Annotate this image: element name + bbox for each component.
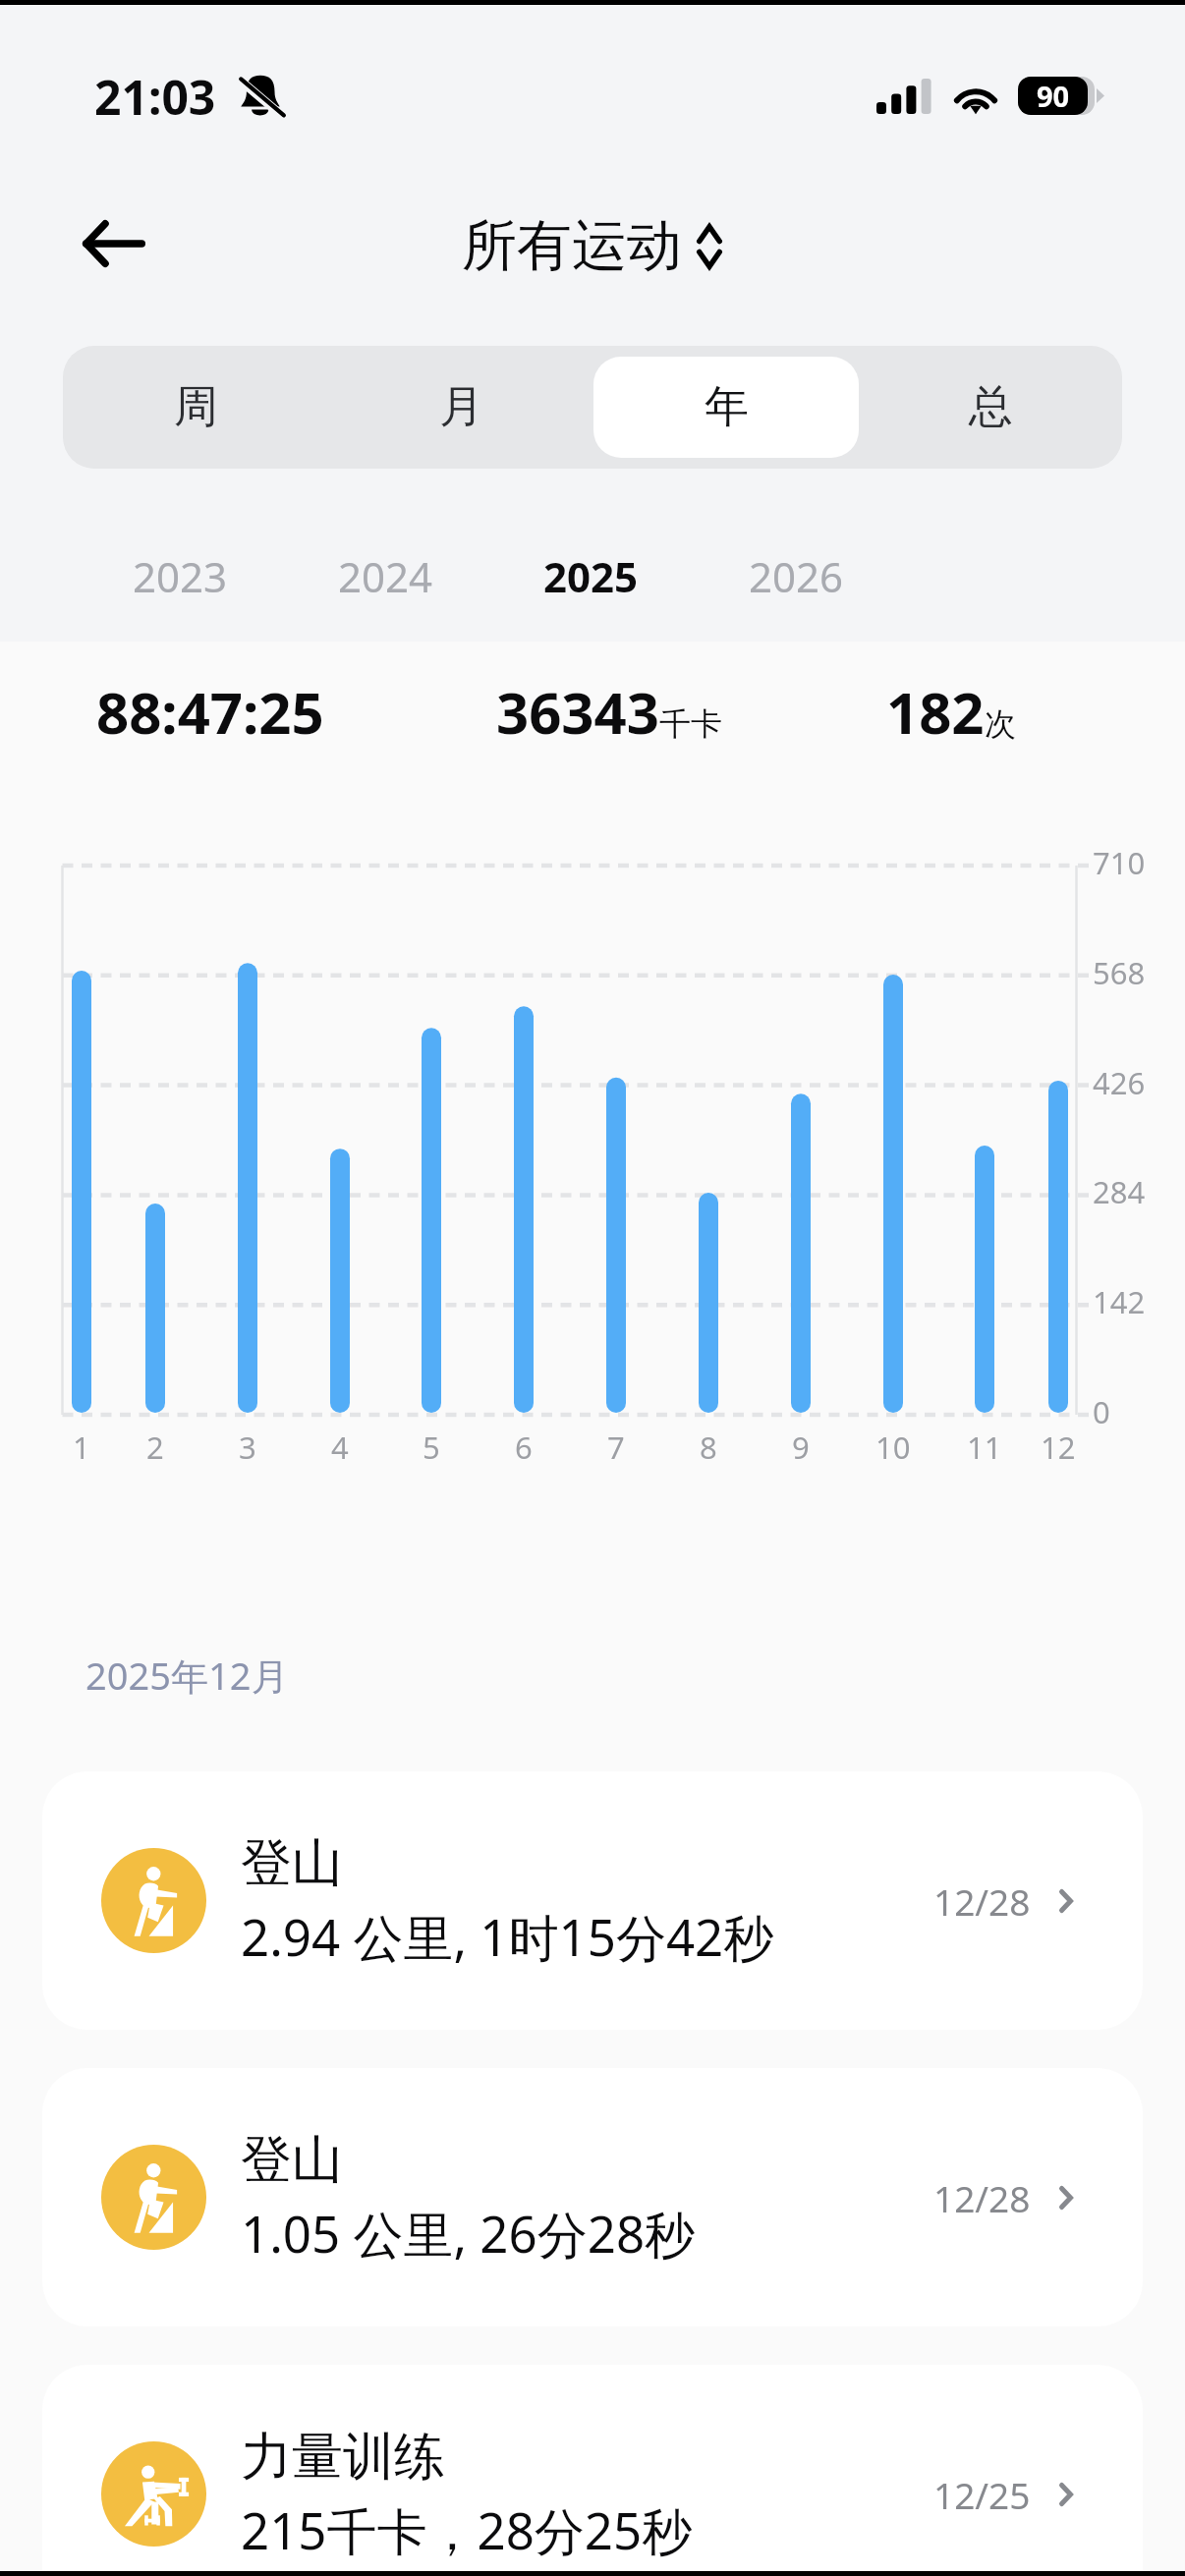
staticText: 2024 xyxy=(338,548,433,604)
button[interactable]: Back xyxy=(69,198,159,289)
staticText: 2026 xyxy=(749,548,844,604)
button[interactable]: 2024 xyxy=(285,545,485,606)
staticText: 3 xyxy=(239,1427,256,1468)
button[interactable]: 2025 xyxy=(490,545,691,606)
staticText: 月 xyxy=(439,379,483,435)
staticText: 710 xyxy=(1093,842,1146,883)
staticText: 周 xyxy=(174,379,218,435)
staticText: 所有运动 xyxy=(462,211,682,281)
button[interactable]: 力量训练 xyxy=(42,2365,1143,2576)
staticText: 284 xyxy=(1093,1171,1146,1212)
staticText: 登山 xyxy=(241,2128,343,2193)
button[interactable]: 周 xyxy=(63,346,328,469)
button[interactable]: 月 xyxy=(328,346,593,469)
staticText: 90 xyxy=(1037,77,1070,115)
staticText: 登山 xyxy=(241,1831,343,1896)
staticText: 12/25 xyxy=(933,2470,1031,2519)
staticText: 11 xyxy=(967,1427,1002,1468)
staticText: 1.05 公里, 26分28秒 xyxy=(241,2199,696,2268)
staticText: 2025 xyxy=(543,548,639,604)
staticText: 1 xyxy=(73,1427,90,1468)
staticText: 6 xyxy=(515,1427,533,1468)
staticText: 12/28 xyxy=(933,1876,1031,1926)
staticText: 568 xyxy=(1093,952,1146,993)
staticText: 36343 xyxy=(496,673,659,751)
staticText: 5 xyxy=(423,1427,440,1468)
staticText: 182 xyxy=(886,673,985,751)
button[interactable]: 登山 xyxy=(42,2068,1143,2326)
staticText: 88:47:25 xyxy=(96,673,324,751)
button[interactable]: 2026 xyxy=(696,545,896,606)
staticText: 2025年12月 xyxy=(85,1650,289,1701)
staticText: 年 xyxy=(705,379,749,435)
staticText: 2 xyxy=(146,1427,164,1468)
staticText: 9 xyxy=(792,1427,810,1468)
staticText: 次 xyxy=(985,704,1016,744)
button[interactable]: 2023 xyxy=(80,545,280,606)
staticText: 142 xyxy=(1093,1281,1146,1322)
staticText: 4 xyxy=(331,1427,349,1468)
staticText: 10 xyxy=(875,1427,911,1468)
staticText: 215千卡，28分25秒 xyxy=(241,2495,693,2564)
staticText: 千卡 xyxy=(659,704,722,744)
staticText: 总 xyxy=(969,379,1013,435)
staticText: 12/28 xyxy=(933,2173,1031,2222)
button[interactable]: 年 xyxy=(593,357,859,458)
staticText: 0 xyxy=(1093,1391,1110,1432)
staticText: 7 xyxy=(607,1427,625,1468)
button[interactable]: 所有运动 xyxy=(462,211,722,281)
staticText: 2.94 公里, 1时15分42秒 xyxy=(241,1902,774,1971)
staticText: 21:03 xyxy=(94,65,216,129)
button[interactable]: 总 xyxy=(859,346,1122,469)
staticText: 力量训练 xyxy=(241,2425,445,2490)
button[interactable]: 登山 xyxy=(42,1771,1143,2030)
staticText: 2023 xyxy=(133,548,228,604)
staticText: 8 xyxy=(700,1427,717,1468)
staticText: 12 xyxy=(1041,1427,1076,1468)
staticText: 426 xyxy=(1093,1062,1146,1103)
